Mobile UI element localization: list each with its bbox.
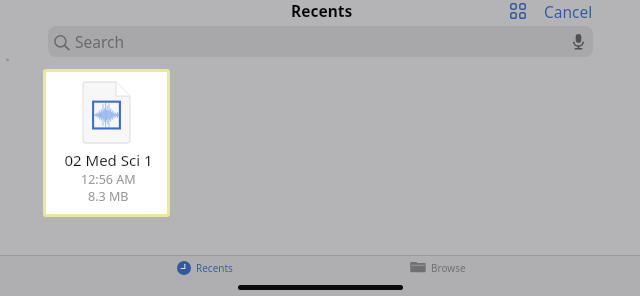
staticText: 12:56 AM	[81, 171, 136, 188]
staticText: Browse	[431, 261, 466, 275]
button[interactable]: 02 Med Sci 1	[46, 72, 167, 214]
button[interactable]: Search	[48, 26, 593, 57]
button[interactable]: Voice search	[570, 33, 587, 50]
staticText: Recents	[196, 261, 233, 275]
staticText: Search	[75, 31, 125, 52]
button[interactable]: Recents	[171, 258, 239, 278]
button[interactable]: Browse	[404, 258, 472, 278]
staticText: 02 Med Sci 1	[64, 150, 153, 170]
button[interactable]: Cancel	[540, 0, 597, 22]
button[interactable]: Grid view	[505, 0, 530, 22]
staticText: 8.3 MB	[88, 188, 129, 205]
staticText: Cancel	[544, 1, 593, 22]
staticText: Recents	[291, 0, 353, 21]
